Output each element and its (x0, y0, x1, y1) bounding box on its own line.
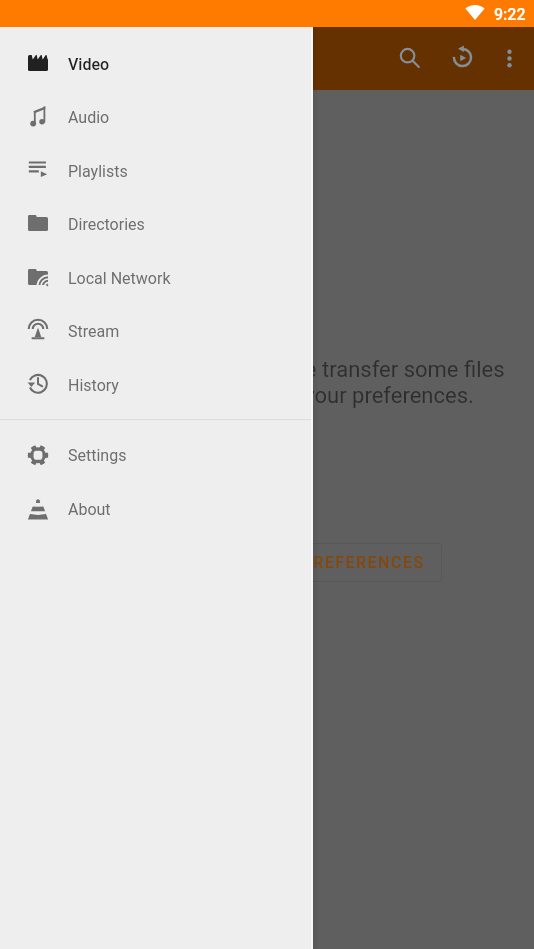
button[interactable]: Video (0, 37, 311, 91)
staticText: CHANGE PREFERENCES (223, 553, 425, 572)
staticText: Stream (68, 322, 120, 341)
staticText: Audio (68, 108, 110, 127)
staticText: Sorry, no media found, please transfer s… (0, 357, 534, 408)
button[interactable]: Search (396, 44, 423, 71)
staticText: Local Network (68, 269, 171, 288)
button[interactable]: Last playlist (449, 44, 476, 71)
button[interactable]: More options (496, 45, 523, 72)
button[interactable]: Settings (0, 428, 311, 482)
button[interactable]: Stream (0, 304, 311, 358)
button[interactable]: Audio (0, 90, 311, 144)
staticText: Video (68, 55, 110, 74)
staticText: Directories (68, 215, 145, 234)
staticText: Playlists (68, 162, 128, 181)
button[interactable]: CHANGE PREFERENCES (206, 543, 442, 582)
button[interactable]: History (0, 358, 311, 412)
staticText: History (68, 376, 119, 395)
button[interactable]: Playlists (0, 144, 311, 198)
button[interactable]: Local Network (0, 251, 311, 305)
staticText: About (68, 500, 111, 519)
button[interactable]: Directories (0, 197, 311, 251)
staticText: Settings (68, 446, 127, 465)
button[interactable]: About (0, 482, 311, 536)
staticText: 9:22 (494, 5, 526, 24)
